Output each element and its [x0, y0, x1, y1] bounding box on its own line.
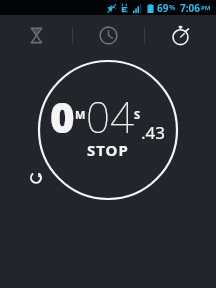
staticText: M: [75, 107, 86, 122]
staticText: %: [169, 3, 176, 13]
staticText: .43: [141, 121, 166, 144]
staticText: 69: [157, 1, 169, 15]
button[interactable]: Stopwatch: [145, 15, 216, 55]
staticText: 04: [86, 88, 134, 145]
staticText: STOP: [87, 140, 129, 160]
staticText: 0: [50, 88, 75, 145]
button[interactable]: Timer: [0, 15, 72, 55]
staticText: PM: [201, 4, 211, 12]
staticText: 7:06: [180, 1, 200, 15]
button[interactable]: Reset: [26, 167, 46, 187]
staticText: S: [134, 107, 141, 122]
button[interactable]: 0: [0, 55, 216, 288]
button[interactable]: Clock: [73, 15, 144, 55]
